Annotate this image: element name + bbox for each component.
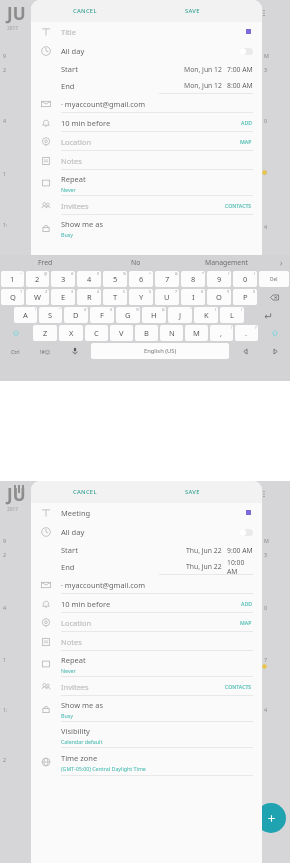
button[interactable]: !#☺ xyxy=(31,343,59,359)
button[interactable]: More options xyxy=(259,8,269,18)
button[interactable]: X xyxy=(59,325,83,341)
button[interactable]: CONTACTS xyxy=(225,683,262,690)
button[interactable]: Location xyxy=(31,132,262,151)
button[interactable]: Repeat xyxy=(31,651,262,677)
button[interactable]: All day xyxy=(31,522,262,542)
button[interactable]: , xyxy=(210,325,233,341)
button[interactable]: CONTACTS xyxy=(225,202,262,209)
button[interactable]: More suggestions xyxy=(272,255,290,270)
button[interactable]: E xyxy=(51,289,75,305)
button[interactable]: Management xyxy=(181,255,272,270)
button[interactable]: CANCEL xyxy=(31,481,138,503)
button[interactable]: 8 xyxy=(181,271,205,287)
button[interactable]: Time zone xyxy=(31,748,262,776)
staticText: 1 xyxy=(20,289,23,294)
button[interactable]: Z xyxy=(33,325,57,341)
button[interactable]: Fred xyxy=(0,255,90,270)
staticText: SAVE xyxy=(185,7,200,15)
button[interactable]: ADD xyxy=(241,600,262,607)
button[interactable]: All day toggle xyxy=(239,48,253,55)
button[interactable]: SAVE xyxy=(138,0,246,22)
button[interactable]: All day toggle xyxy=(239,529,253,536)
button[interactable]: L xyxy=(220,307,244,323)
button[interactable]: Del xyxy=(259,271,289,287)
button[interactable]: Repeat xyxy=(31,170,262,196)
button[interactable]: CANCEL xyxy=(31,0,138,22)
button[interactable]: Add event xyxy=(256,803,286,833)
button[interactable]: G xyxy=(116,307,140,323)
button[interactable]: 3 xyxy=(51,271,75,287)
button[interactable]: W xyxy=(26,289,49,305)
button[interactable]: F xyxy=(90,307,114,323)
button[interactable]: D xyxy=(64,307,88,323)
button[interactable]: 2 xyxy=(26,271,49,287)
button[interactable]: Ctrl xyxy=(1,343,29,359)
button[interactable]: B xyxy=(135,325,158,341)
button[interactable]: Y xyxy=(129,289,153,305)
staticText: 5 xyxy=(123,289,126,294)
button[interactable]: SAVE xyxy=(138,481,246,503)
button[interactable]: Menu xyxy=(14,485,26,493)
button[interactable]: U xyxy=(155,289,179,305)
staticText: MAP xyxy=(240,138,252,145)
button[interactable]: M xyxy=(185,325,208,341)
button[interactable]: 0 xyxy=(233,271,257,287)
button[interactable]: T xyxy=(103,289,127,305)
button[interactable]: K xyxy=(194,307,218,323)
button[interactable]: All day xyxy=(31,41,262,61)
button[interactable]: J xyxy=(168,307,192,323)
button[interactable]: Backspace xyxy=(258,288,290,306)
button[interactable]: 1 xyxy=(1,271,24,287)
button[interactable]: Title xyxy=(31,22,262,41)
button[interactable]: Notes xyxy=(31,632,262,651)
button[interactable]: Invitees xyxy=(31,196,262,215)
button[interactable]: 6 xyxy=(129,271,153,287)
button[interactable]: Invitees xyxy=(31,677,262,696)
button[interactable]: H xyxy=(142,307,166,323)
button[interactable]: S xyxy=(39,307,62,323)
button[interactable]: Q xyxy=(1,289,24,305)
button[interactable]: No xyxy=(90,255,181,270)
button[interactable]: Visibility xyxy=(31,722,262,748)
button[interactable]: Enter xyxy=(245,306,290,324)
button[interactable]: 10 min before xyxy=(31,113,262,132)
button[interactable]: Location xyxy=(31,613,262,632)
button[interactable]: End xyxy=(31,77,262,94)
button[interactable]: More options xyxy=(259,489,269,499)
button[interactable]: English (US) xyxy=(91,343,229,359)
button[interactable]: I xyxy=(181,289,205,305)
button[interactable]: O xyxy=(207,289,231,305)
button[interactable]: N xyxy=(160,325,183,341)
button[interactable]: ADD xyxy=(241,119,262,126)
staticText: MAP xyxy=(240,619,252,626)
button[interactable]: 7 xyxy=(155,271,179,287)
button[interactable]: Previous xyxy=(230,342,260,360)
staticText: No xyxy=(131,258,141,267)
button[interactable]: End xyxy=(31,558,262,575)
button[interactable]: Next xyxy=(260,342,290,360)
button[interactable]: R xyxy=(77,289,101,305)
button[interactable]: Meeting xyxy=(31,503,262,522)
button[interactable]: 5 xyxy=(103,271,127,287)
button[interactable]: Start xyxy=(31,542,262,558)
button[interactable]: Voice input xyxy=(60,342,90,360)
button[interactable]: Start xyxy=(31,61,262,77)
staticText: Location xyxy=(61,618,240,628)
button[interactable]: · myaccount@gmail.com xyxy=(31,575,262,594)
button[interactable]: 9 xyxy=(207,271,231,287)
button[interactable]: MAP xyxy=(240,138,262,145)
button[interactable]: C xyxy=(85,325,108,341)
button[interactable]: Shift xyxy=(259,324,290,342)
button[interactable]: . xyxy=(235,325,258,341)
button[interactable]: · myaccount@gmail.com xyxy=(31,94,262,113)
button[interactable]: Shift xyxy=(0,324,32,342)
button[interactable]: Notes xyxy=(31,151,262,170)
button[interactable]: A xyxy=(14,307,37,323)
button[interactable]: P xyxy=(233,289,257,305)
button[interactable]: Show me as xyxy=(31,215,262,241)
button[interactable]: Show me as xyxy=(31,696,262,722)
button[interactable]: 10 min before xyxy=(31,594,262,613)
button[interactable]: 4 xyxy=(77,271,101,287)
button[interactable]: MAP xyxy=(240,619,262,626)
button[interactable]: V xyxy=(110,325,133,341)
